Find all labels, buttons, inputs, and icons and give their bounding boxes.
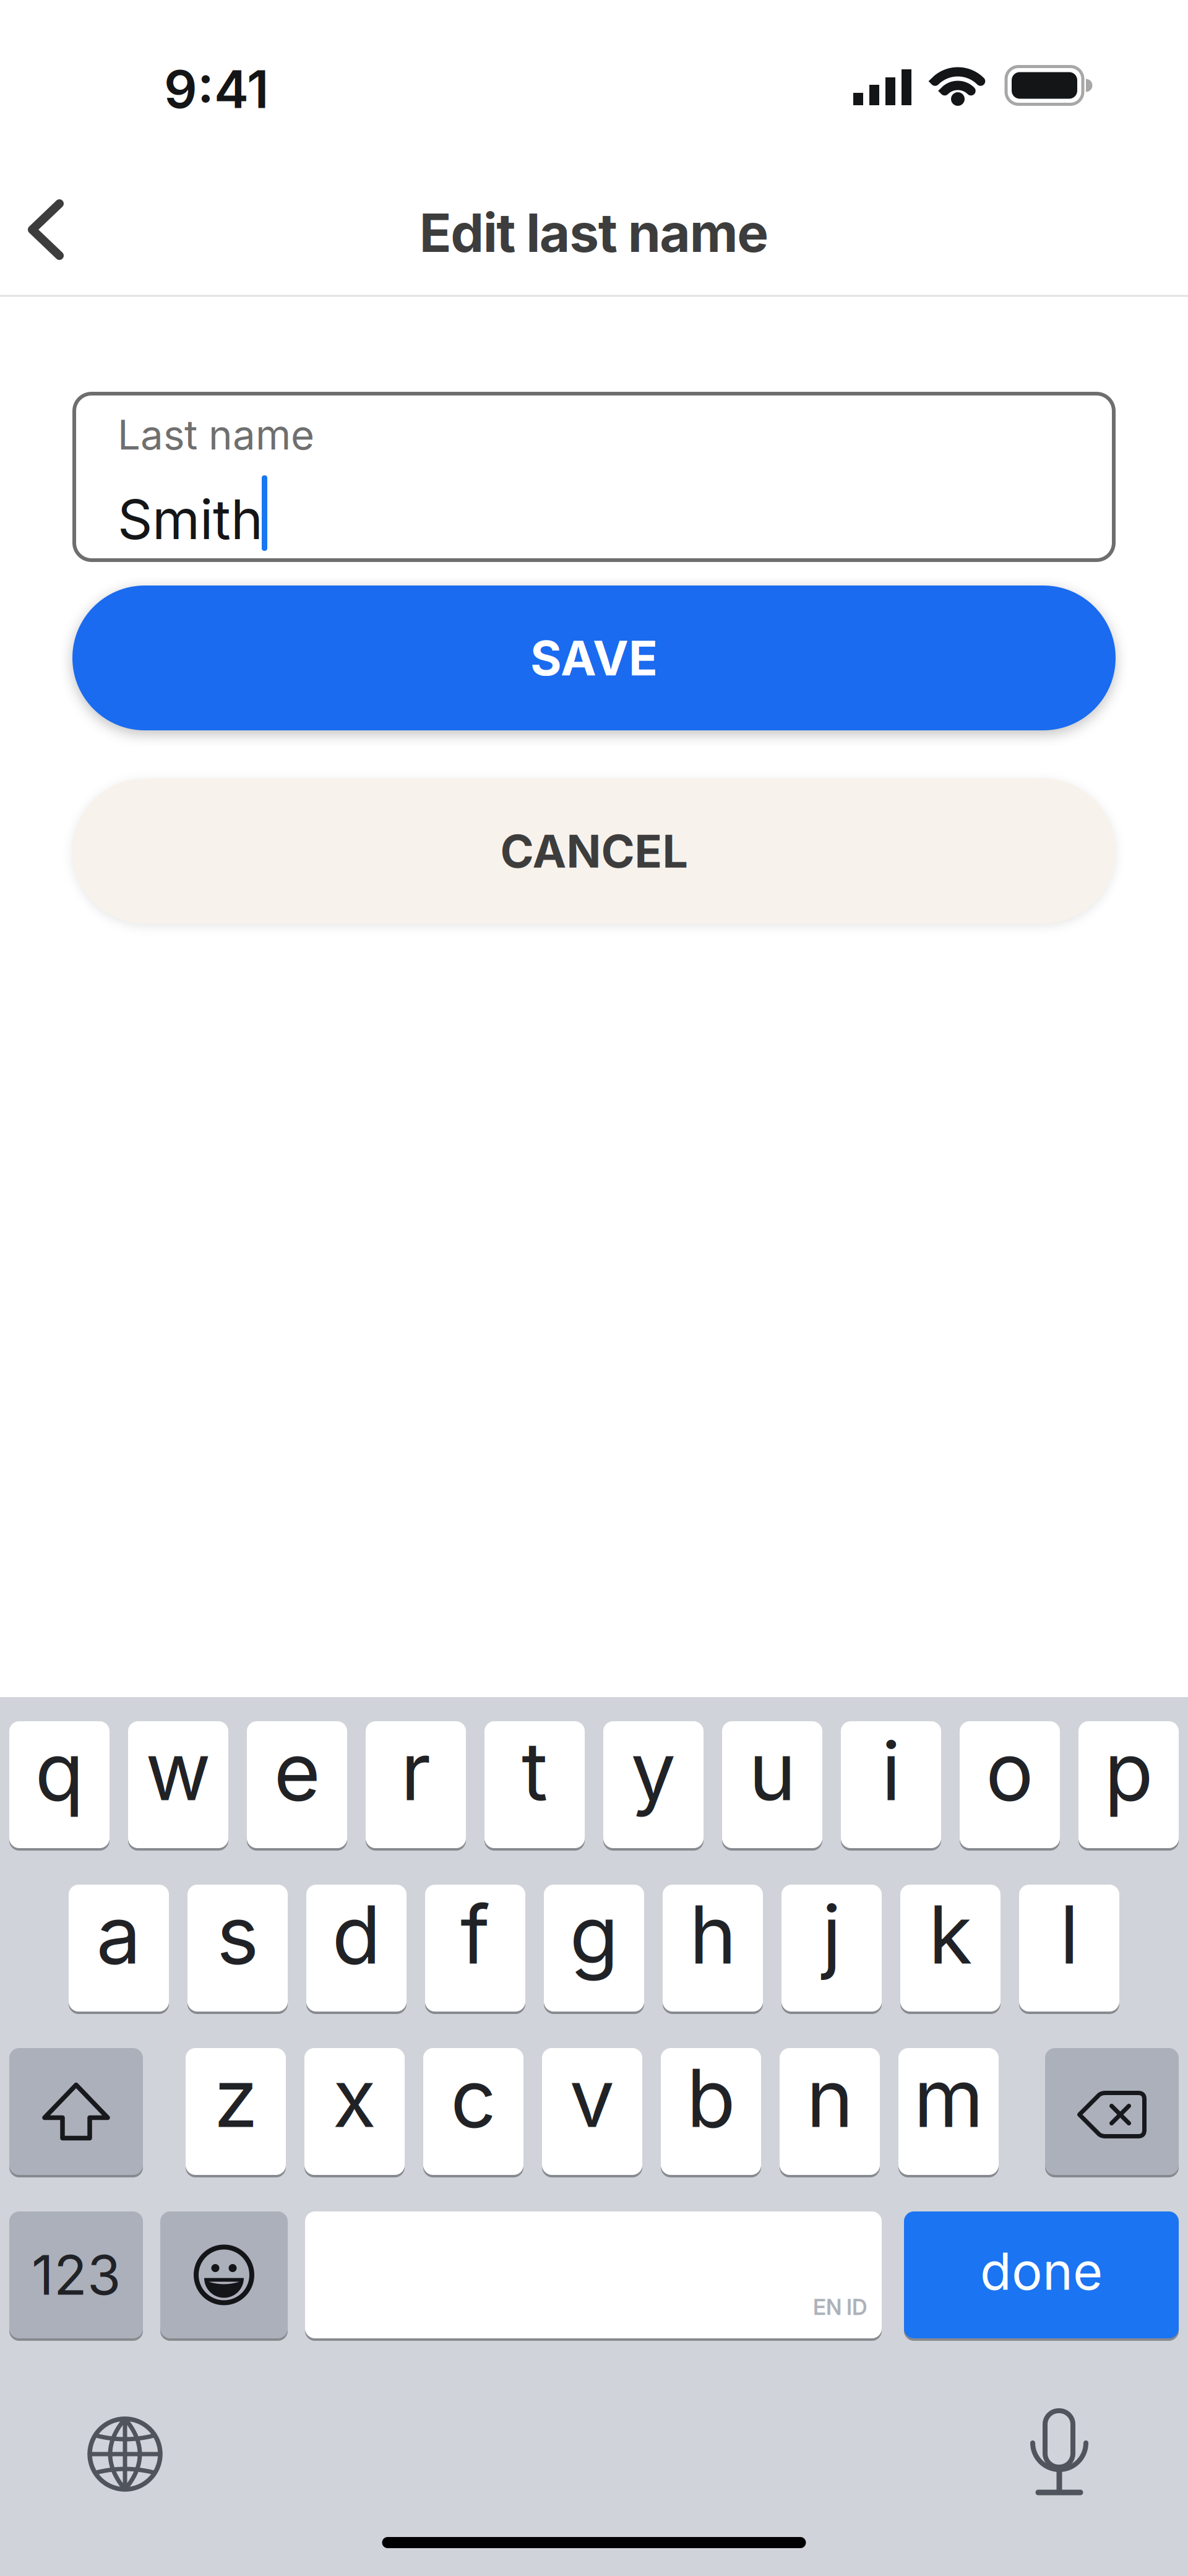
button[interactable]: Delete <box>1045 2047 1179 2176</box>
button[interactable]: Last name, Smith <box>74 394 1114 560</box>
button[interactable]: SAVE <box>72 586 1116 730</box>
button[interactable]: n <box>780 2047 880 2176</box>
button[interactable]: g <box>544 1883 644 2013</box>
button[interactable]: f <box>425 1883 525 2013</box>
staticText: i <box>881 1724 901 1818</box>
staticText: d <box>332 1887 381 1982</box>
staticText: k <box>928 1887 972 1982</box>
staticText: z <box>214 2051 258 2145</box>
staticText: j <box>822 1887 841 1982</box>
staticText: b <box>687 2051 735 2145</box>
button[interactable]: x <box>304 2047 405 2176</box>
button[interactable]: l <box>1019 1883 1119 2013</box>
button[interactable]: Next keyboard <box>87 2416 163 2492</box>
button[interactable]: k <box>900 1883 1001 2013</box>
staticText: g <box>570 1887 618 1982</box>
button[interactable]: c <box>423 2047 523 2176</box>
button[interactable]: u <box>722 1720 822 1849</box>
button[interactable]: h <box>663 1883 763 2013</box>
button[interactable]: d <box>306 1883 407 2013</box>
staticText: Smith <box>118 487 263 551</box>
staticText: v <box>570 2051 615 2145</box>
staticText: a <box>96 1887 141 1982</box>
button[interactable]: Dictation <box>1031 2411 1087 2499</box>
staticText: u <box>749 1724 796 1818</box>
staticText: 9:41 <box>164 58 269 120</box>
staticText: l <box>1060 1887 1079 1982</box>
button[interactable]: e <box>247 1720 347 1849</box>
staticText: o <box>986 1724 1034 1818</box>
button[interactable]: p <box>1078 1720 1179 1849</box>
button[interactable]: b <box>661 2047 761 2176</box>
staticText: SAVE <box>530 630 658 686</box>
button[interactable]: w <box>128 1720 228 1849</box>
staticText: w <box>145 1724 211 1818</box>
staticText: s <box>217 1887 259 1982</box>
button[interactable]: 123 <box>9 2210 143 2340</box>
button[interactable]: i <box>841 1720 941 1849</box>
staticText: y <box>631 1724 676 1818</box>
button[interactable]: y <box>603 1720 704 1849</box>
staticText: c <box>450 2051 496 2145</box>
staticText: t <box>522 1724 548 1818</box>
staticText: m <box>914 2051 984 2145</box>
staticText: Edit last name <box>419 202 769 264</box>
button[interactable]: Space <box>305 2210 882 2340</box>
button[interactable]: Shift <box>9 2047 143 2176</box>
staticText: r <box>401 1724 431 1818</box>
button[interactable]: o <box>960 1720 1060 1849</box>
button[interactable]: m <box>898 2047 999 2176</box>
button[interactable]: Back <box>27 199 64 260</box>
button[interactable]: s <box>187 1883 288 2013</box>
staticText: EN ID <box>813 2294 867 2320</box>
button[interactable]: CANCEL <box>72 779 1116 923</box>
button[interactable]: a <box>69 1883 169 2013</box>
staticText: f <box>460 1887 490 1982</box>
staticText: done <box>980 2241 1103 2301</box>
button[interactable]: Emoji <box>160 2210 288 2340</box>
staticText: e <box>274 1724 320 1818</box>
button[interactable]: t <box>484 1720 585 1849</box>
staticText: CANCEL <box>500 824 688 878</box>
staticText: 123 <box>32 2243 121 2307</box>
staticText: p <box>1104 1724 1153 1818</box>
staticText: q <box>35 1724 84 1818</box>
button[interactable]: q <box>9 1720 110 1849</box>
button[interactable]: z <box>186 2047 286 2176</box>
staticText: n <box>806 2051 853 2145</box>
button[interactable]: v <box>542 2047 642 2176</box>
button[interactable]: done <box>904 2210 1179 2340</box>
button[interactable]: r <box>366 1720 466 1849</box>
staticText: h <box>689 1887 736 1982</box>
staticText: Last name <box>118 411 314 459</box>
button[interactable]: j <box>781 1883 882 2013</box>
staticText: x <box>333 2051 377 2145</box>
